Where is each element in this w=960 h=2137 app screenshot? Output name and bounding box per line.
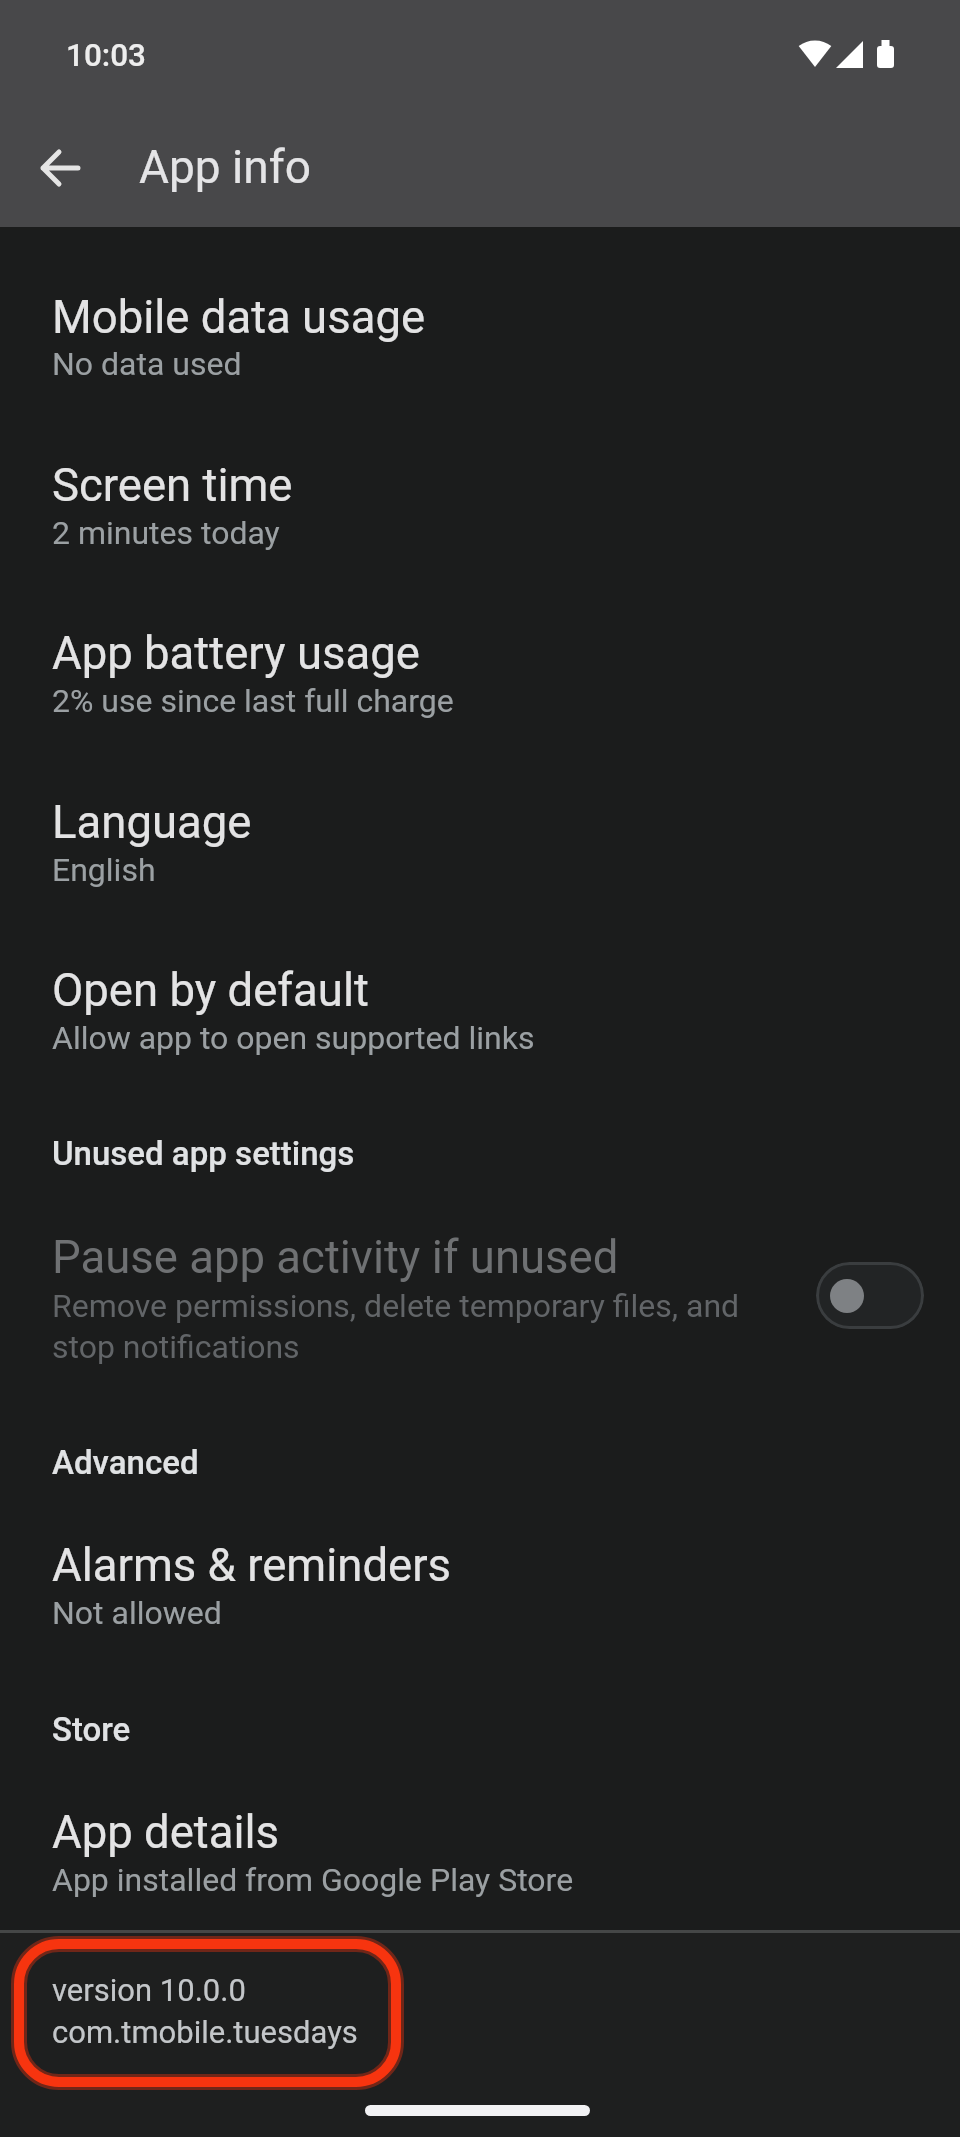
staticText: Remove permissions, delete temporary fil… — [52, 1287, 740, 1366]
button[interactable]: version 10.0.0 — [0, 1943, 960, 2083]
staticText: No data used — [52, 345, 242, 383]
button[interactable]: App details — [0, 1772, 960, 1932]
staticText: version 10.0.0 — [52, 1972, 246, 2008]
staticText: Screen time — [52, 459, 293, 512]
staticText: Mobile data usage — [52, 291, 426, 344]
staticText: Alarms & reminders — [52, 1539, 452, 1592]
staticText: 2% use since last full charge — [52, 682, 454, 720]
button[interactable]: Mobile data usage — [0, 255, 960, 415]
staticText: Allow app to open supported links — [52, 1019, 535, 1057]
staticText: Advanced — [52, 1443, 199, 1482]
staticText: Unused app settings — [52, 1134, 355, 1173]
button[interactable]: Screen time — [0, 425, 960, 585]
button[interactable]: Language — [0, 762, 960, 922]
staticText: App installed from Google Play Store — [52, 1861, 574, 1899]
staticText: Language — [52, 796, 252, 849]
staticText: English — [52, 851, 156, 889]
staticText: Not allowed — [52, 1594, 222, 1632]
button[interactable] — [20, 128, 100, 208]
staticText: 2 minutes today — [52, 514, 280, 552]
staticText: com.tmobile.tuesdays — [52, 2014, 358, 2050]
staticText: 10:03 — [66, 37, 146, 74]
staticText: Pause app activity if unused — [52, 1231, 619, 1284]
button[interactable]: Alarms & reminders — [0, 1505, 960, 1665]
button[interactable]: Pause app activity if unused — [0, 1197, 960, 1397]
button[interactable]: Open by default — [0, 930, 960, 1090]
button[interactable]: App battery usage — [0, 593, 960, 753]
staticText: Open by default — [52, 964, 369, 1017]
staticText: App info — [139, 140, 311, 194]
staticText: App battery usage — [52, 627, 420, 680]
staticText: App details — [52, 1806, 280, 1859]
staticText: Store — [52, 1710, 131, 1749]
